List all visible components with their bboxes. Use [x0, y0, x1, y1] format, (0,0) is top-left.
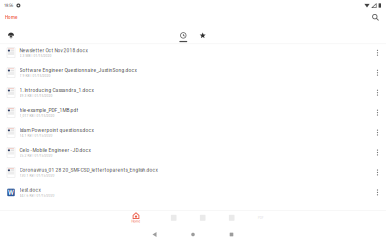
button[interactable]: 1. Introducing Cassandra_1.docx: [0, 84, 386, 104]
button[interactable]: Offline: [188, 211, 217, 228]
staticText: Islam Powerpoint questions.docx: [19, 127, 93, 133]
button[interactable]: file-example_PDF_1MB.pdf: [0, 104, 386, 124]
staticText: 7.9 KB | 01/15/2020: [19, 74, 50, 78]
button[interactable]: Software Engineer Questionnaire_JustinSo…: [0, 64, 386, 84]
staticText: Home: [131, 219, 140, 223]
staticText: Celo - Mobile Engineer - JD.docx: [19, 147, 90, 153]
staticText: 130.1 KB | 01/15/2020: [19, 174, 54, 177]
button[interactable]: Home: [174, 228, 212, 240]
staticText: test.docx: [19, 187, 40, 193]
button[interactable]: Recents: [212, 228, 251, 240]
staticText: 49.3 KB | 01/15/2020: [19, 94, 52, 98]
staticText: Coronavirus_01 28 20_SMFCSD_lettertopare…: [19, 167, 157, 173]
staticText: 1. Introducing Cassandra_1.docx: [19, 88, 93, 93]
button[interactable]: Recent: [177, 25, 190, 42]
staticText: 1,017 KB | 01/15/2020: [19, 114, 54, 118]
staticText: Software Engineer Questionnaire_JustinSo…: [19, 68, 136, 73]
button[interactable]: Home: [121, 211, 150, 228]
button[interactable]: Back: [135, 228, 174, 240]
button[interactable]: Newsletter Oct Nov 2018.docx: [0, 44, 386, 64]
staticText: 447.6 KB | 01/15/2020: [19, 194, 54, 197]
button[interactable]: Islam Powerpoint questions.docx: [0, 124, 386, 144]
staticText: W: [8, 188, 14, 196]
button[interactable]: Shared: [159, 211, 188, 228]
button[interactable]: Search: [369, 11, 382, 24]
button[interactable]: Upload: [4, 25, 18, 42]
staticText: PDF: [258, 216, 264, 220]
button[interactable]: Celo - Mobile Engineer - JD.docx: [0, 144, 386, 164]
staticText: 18:56: [4, 3, 13, 8]
staticText: 14.1 KB | 01/15/2020: [19, 134, 52, 138]
button[interactable]: Favourites: [196, 25, 209, 42]
staticText: Newsletter Oct Nov 2018.docx: [19, 48, 87, 53]
button[interactable]: Coronavirus_01 28 20_SMFCSD_lettertopare…: [0, 164, 386, 184]
staticText: 25.2 KB | 01/15/2020: [19, 154, 52, 158]
button[interactable]: Account: [217, 211, 246, 228]
staticText: Home: [5, 15, 17, 20]
staticText: 2.3 MB | 01/15/2020: [19, 54, 51, 58]
button[interactable]: W: [0, 184, 386, 204]
staticText: file-example_PDF_1MB.pdf: [19, 108, 78, 113]
